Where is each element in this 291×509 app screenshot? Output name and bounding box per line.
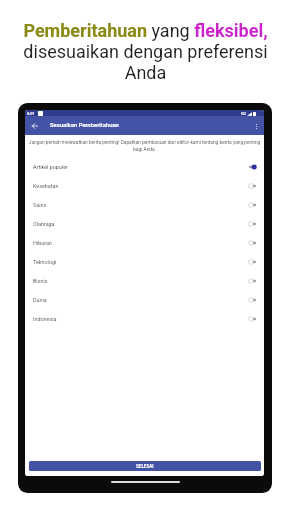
button[interactable]: More options xyxy=(251,121,261,131)
button[interactable]: Back xyxy=(29,120,41,132)
button[interactable]: Olahraga xyxy=(25,214,264,233)
staticText: Hiburan xyxy=(33,240,52,246)
staticText: Indonesia xyxy=(33,316,57,322)
staticText: Pemberitahuan yang fleksibel, disesuaika… xyxy=(10,20,281,83)
button[interactable]: Sains xyxy=(25,195,264,214)
staticText: 5G xyxy=(241,111,246,116)
staticText: Sesuaikan Pemberitahuan xyxy=(50,122,119,129)
staticText: 8:01 xyxy=(27,111,35,116)
staticText: Olahraga xyxy=(33,221,55,227)
staticText: Teknologi xyxy=(33,259,57,265)
button[interactable]: SELESAI xyxy=(29,461,261,471)
button[interactable]: Dunia xyxy=(25,290,264,309)
staticText: Bisnis xyxy=(33,278,48,284)
button[interactable]: Teknologi xyxy=(25,252,264,271)
button[interactable]: Artikel populer xyxy=(25,157,264,176)
button[interactable]: Bisnis xyxy=(25,271,264,290)
staticText: Dunia xyxy=(33,297,47,303)
staticText: Jangan pernah melewatkan berita penting!… xyxy=(28,140,261,152)
button[interactable]: Hiburan xyxy=(25,233,264,252)
staticText: SELESAI xyxy=(136,464,154,469)
staticText: Kesehatan xyxy=(33,183,59,189)
button[interactable]: Kesehatan xyxy=(25,176,264,195)
staticText: Sains xyxy=(33,202,47,208)
staticText: Artikel populer xyxy=(33,164,68,170)
button[interactable]: Indonesia xyxy=(25,309,264,328)
